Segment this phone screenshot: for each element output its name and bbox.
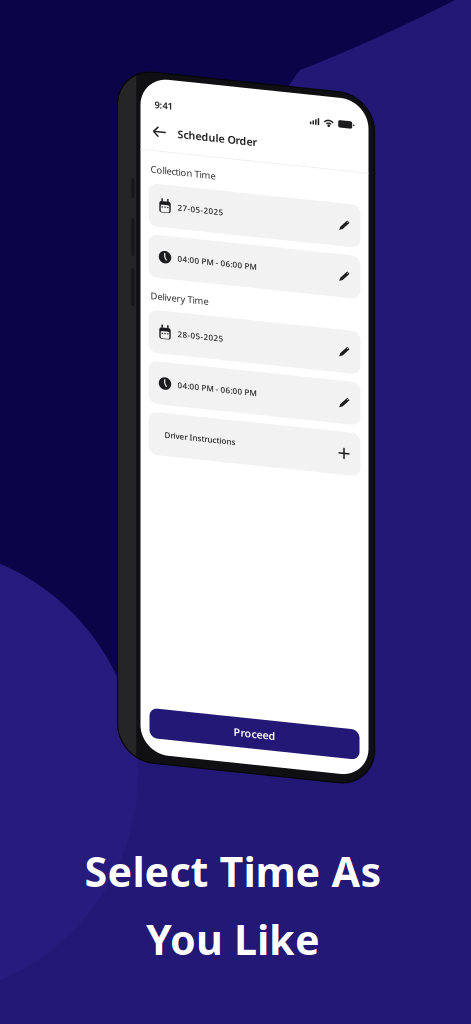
staticText: 04:00 PM - 06:00 PM [177, 373, 256, 384]
button[interactable]: Back [150, 118, 168, 136]
staticText: Delivery Time [150, 286, 208, 298]
staticText: 28-05-2025 [177, 322, 223, 333]
staticText: Select Time As [84, 844, 381, 898]
button[interactable]: Proceed [149, 704, 359, 734]
staticText: Driver Instructions [164, 424, 235, 435]
staticText: 27-05-2025 [177, 196, 223, 206]
staticText: Proceed [233, 712, 275, 727]
staticText: Collection Time [150, 159, 215, 172]
staticText: 04:00 PM - 06:00 PM [177, 247, 256, 257]
button[interactable]: 28-05-2025 [148, 306, 360, 349]
button[interactable]: Driver Instructions [148, 408, 360, 451]
staticText: You Like [146, 911, 320, 966]
staticText: 9:41 [154, 94, 172, 107]
staticText: Schedule Order [177, 120, 257, 135]
button[interactable]: 04:00 PM - 06:00 PM [148, 231, 360, 274]
button[interactable]: 04:00 PM - 06:00 PM [148, 357, 360, 400]
button[interactable]: 27-05-2025 [148, 180, 360, 223]
